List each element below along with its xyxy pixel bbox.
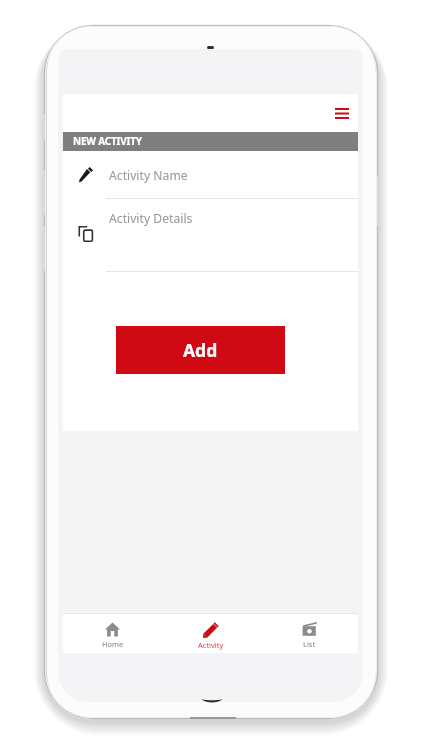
- button[interactable]: Activity: [162, 614, 260, 653]
- staticText: Activity: [198, 640, 224, 650]
- staticText: Add: [183, 338, 218, 362]
- button[interactable]: Menu: [327, 98, 357, 128]
- staticText: List: [303, 639, 316, 649]
- button[interactable]: Activity Name: [63, 151, 358, 198]
- staticText: Home: [102, 639, 124, 649]
- staticText: NEW ACTIVITY: [73, 134, 142, 148]
- button[interactable]: Add: [116, 326, 285, 374]
- button[interactable]: Activity Details: [63, 199, 358, 271]
- staticText: Activity Details: [109, 210, 193, 227]
- button[interactable]: List: [260, 614, 358, 653]
- staticText: Activity Name: [109, 167, 188, 184]
- button[interactable]: Home: [63, 614, 162, 653]
